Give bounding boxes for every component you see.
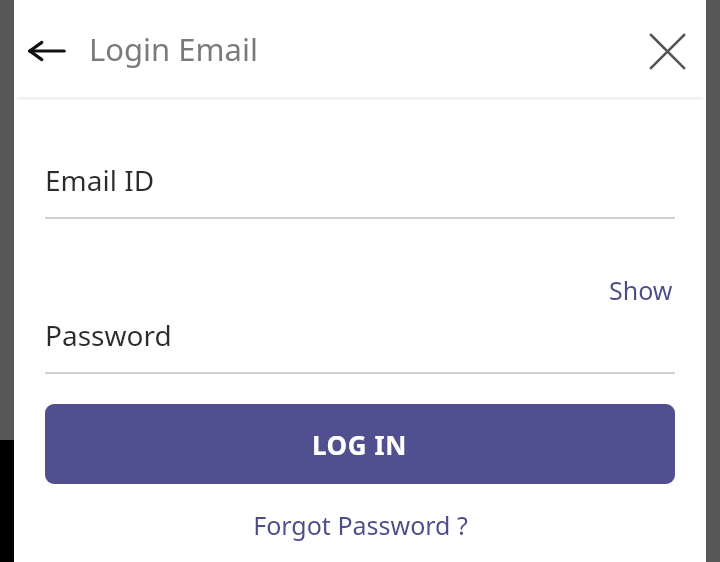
staticText: Password bbox=[45, 316, 172, 354]
button[interactable]: Email ID bbox=[45, 161, 675, 219]
button[interactable]: Password bbox=[45, 316, 675, 374]
button[interactable]: Forgot Password ? bbox=[45, 502, 675, 548]
staticText: LOG IN bbox=[312, 427, 408, 462]
staticText: Forgot Password ? bbox=[253, 508, 468, 542]
staticText: Email ID bbox=[45, 161, 155, 199]
staticText: Show bbox=[609, 273, 673, 307]
button[interactable]: LOG IN bbox=[45, 404, 675, 484]
staticText: Login Email bbox=[89, 28, 258, 70]
button[interactable]: Back bbox=[18, 22, 76, 80]
button[interactable]: Close bbox=[635, 19, 699, 83]
button[interactable]: Show bbox=[607, 272, 675, 308]
